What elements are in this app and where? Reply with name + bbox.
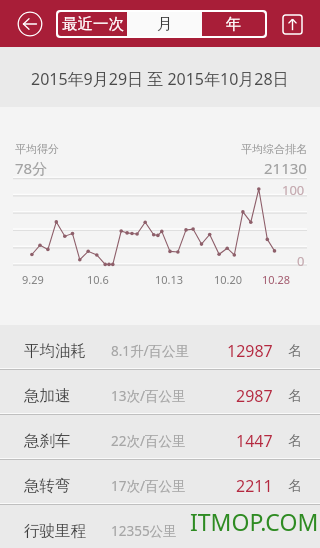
staticText: 10.28 (262, 272, 291, 287)
button[interactable]: 平均油耗 (0, 325, 320, 370)
staticText: 2211 (236, 475, 273, 497)
staticText: 名 (288, 477, 302, 494)
staticText: 急转弯 (24, 476, 71, 496)
button[interactable]: 最近一次 (58, 12, 127, 36)
staticText: 急刹车 (24, 431, 71, 451)
staticText: 10.13 (155, 272, 184, 287)
button[interactable]: Share (282, 14, 302, 34)
staticText: 最近一次 (62, 14, 124, 34)
staticText: 10.20 (214, 272, 243, 287)
staticText: 年 (226, 14, 242, 34)
staticText: 月 (157, 14, 173, 34)
staticText: 名 (288, 342, 302, 359)
staticText: 10.6 (87, 272, 109, 287)
button[interactable]: 月 (127, 12, 202, 36)
staticText: 1447 (236, 430, 273, 452)
staticText: 100 (282, 181, 305, 199)
staticText: 0 (297, 252, 305, 270)
button[interactable]: 行驶里程 (0, 505, 320, 548)
staticText: 名 (288, 432, 302, 449)
button[interactable]: 急刹车 (0, 415, 320, 460)
button[interactable]: 急加速 (0, 370, 320, 415)
button[interactable]: 急转弯 (0, 460, 320, 505)
staticText: 2987 (236, 385, 273, 407)
staticText: 12987 (227, 340, 273, 362)
button[interactable]: Back (17, 11, 43, 37)
staticText: 22次/百公里 (111, 432, 186, 450)
staticText: 12355公里 (111, 522, 177, 540)
staticText: 平均油耗 (24, 341, 86, 361)
staticText: 名 (288, 387, 302, 404)
button[interactable]: 年 (202, 12, 265, 36)
staticText: 21130 (264, 158, 307, 178)
staticText: 2015年9月29日 至 2015年10月28日 (31, 68, 289, 90)
staticText: ITMOP.COM (190, 506, 319, 537)
staticText: 平均得分 (15, 142, 59, 156)
staticText: 78分 (15, 158, 48, 178)
staticText: 9.29 (22, 272, 44, 287)
staticText: 13次/百公里 (111, 387, 186, 405)
staticText: 17次/百公里 (111, 477, 186, 495)
staticText: 8.1升/百公里 (111, 342, 190, 360)
staticText: 平均综合排名 (241, 142, 307, 156)
staticText: 行驶里程 (24, 521, 86, 541)
staticText: 急加速 (24, 386, 71, 406)
